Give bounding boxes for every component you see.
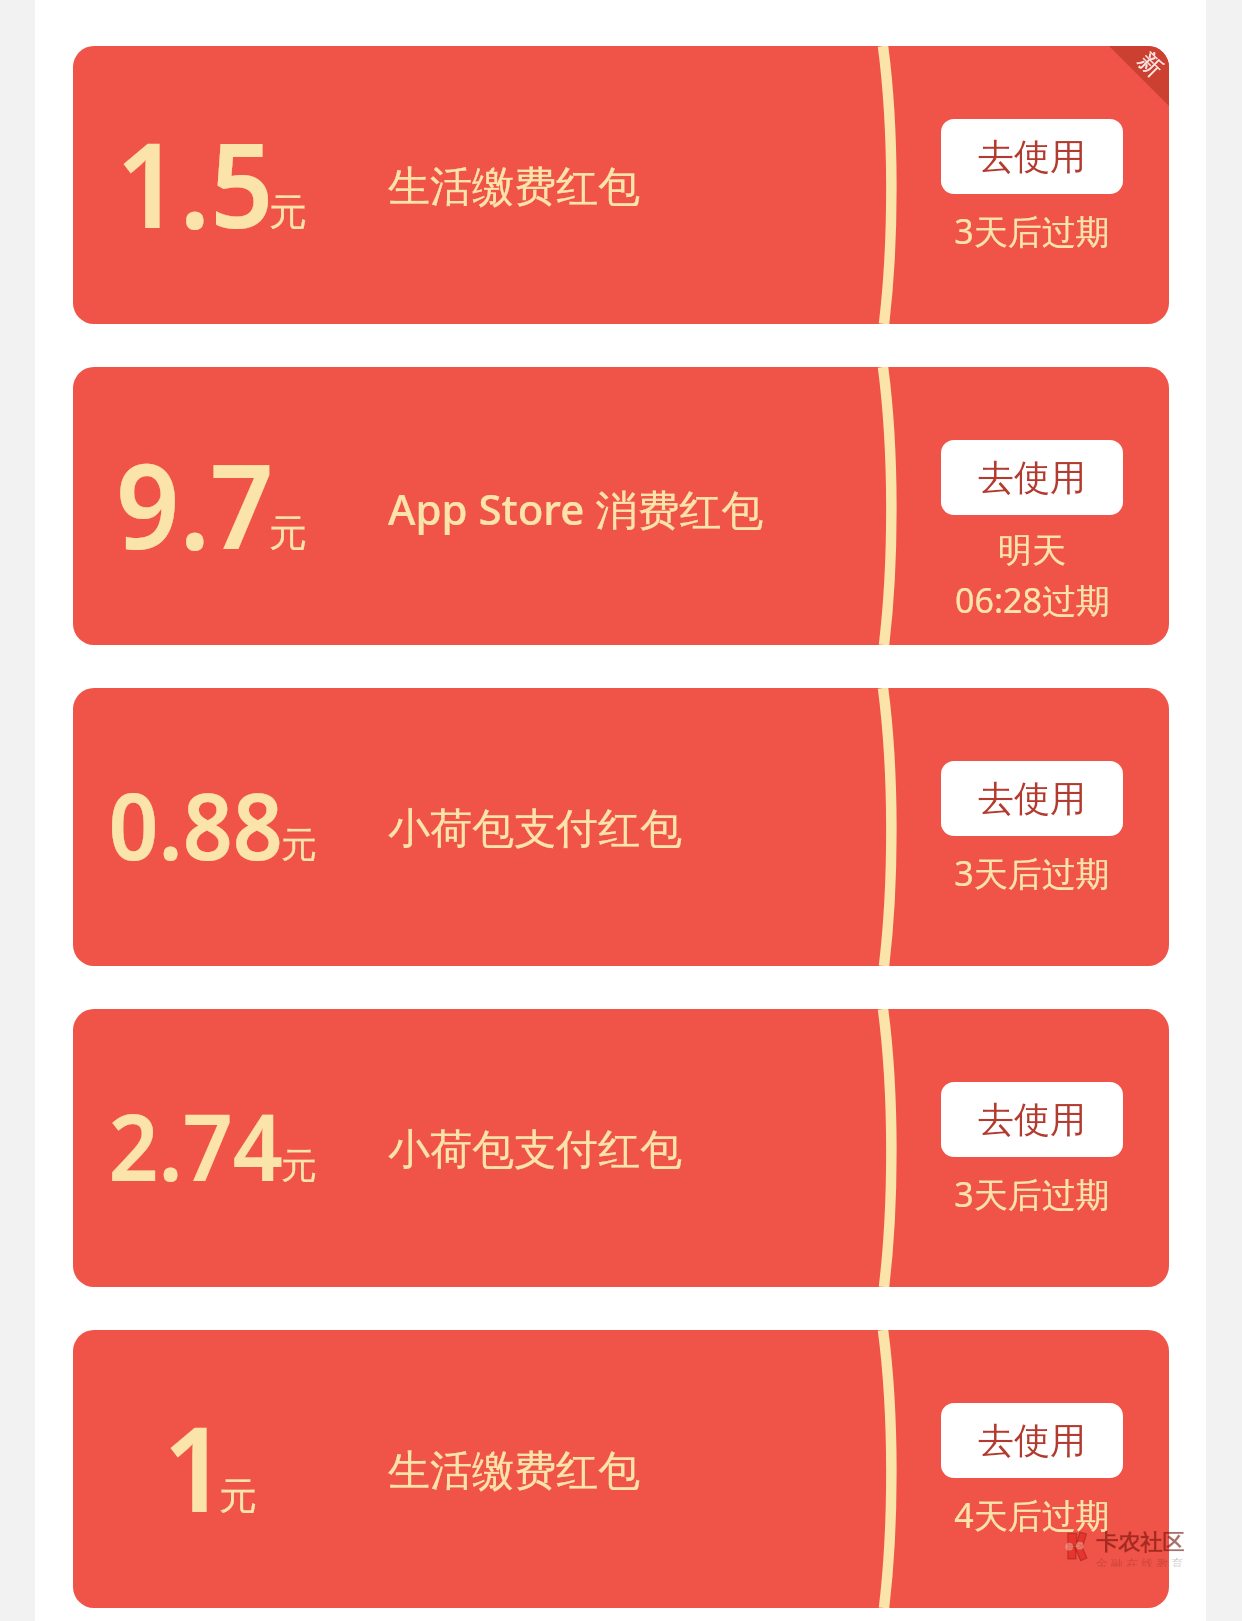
staticText: 2.74	[109, 1082, 283, 1209]
staticText: 元	[269, 509, 307, 557]
staticText: 元	[269, 188, 307, 236]
staticText: 06:28过期	[955, 577, 1110, 623]
staticText: 3天后过期	[954, 1171, 1110, 1217]
other: 新	[1109, 46, 1169, 106]
staticText: 去使用	[978, 134, 1086, 179]
button[interactable]: 9.7	[73, 367, 1169, 645]
button[interactable]: 0.88	[73, 688, 1169, 966]
staticText: 小荷包支付红包	[388, 1124, 682, 1177]
staticText: 元	[281, 1143, 317, 1188]
staticText: 3天后过期	[954, 850, 1110, 896]
staticText: 1.5	[116, 102, 274, 263]
staticText: 新	[1132, 46, 1169, 83]
staticText: 去使用	[978, 1097, 1086, 1142]
button[interactable]: 1.5	[73, 46, 1169, 324]
staticText: 0.88	[109, 761, 283, 888]
button[interactable]: 去使用	[941, 119, 1123, 194]
staticText: 元	[281, 822, 317, 867]
staticText: 生活缴费红包	[388, 161, 640, 214]
staticText: 小荷包支付红包	[388, 803, 682, 856]
button[interactable]: 去使用	[941, 1403, 1123, 1478]
staticText: 9.7	[116, 423, 274, 584]
button[interactable]: 去使用	[941, 440, 1123, 515]
staticText: 1	[163, 1386, 227, 1547]
button[interactable]: 1	[73, 1330, 1169, 1608]
staticText: 金 融 在 线 教 育	[1096, 1555, 1184, 1567]
button[interactable]: 去使用	[941, 761, 1123, 836]
staticText: 3天后过期	[954, 208, 1110, 254]
staticText: 去使用	[978, 1418, 1086, 1463]
button[interactable]: 去使用	[941, 1082, 1123, 1157]
staticText: App Store 消费红包	[388, 480, 764, 537]
staticText: 明天	[998, 529, 1066, 572]
button[interactable]: 2.74	[73, 1009, 1169, 1287]
staticText: 去使用	[978, 455, 1086, 500]
staticText: 元	[219, 1472, 257, 1520]
staticText: 生活缴费红包	[388, 1445, 640, 1498]
staticText: 去使用	[978, 776, 1086, 821]
staticText: 4天后过期	[954, 1492, 1110, 1538]
staticText: 卡农社区	[1096, 1529, 1184, 1557]
